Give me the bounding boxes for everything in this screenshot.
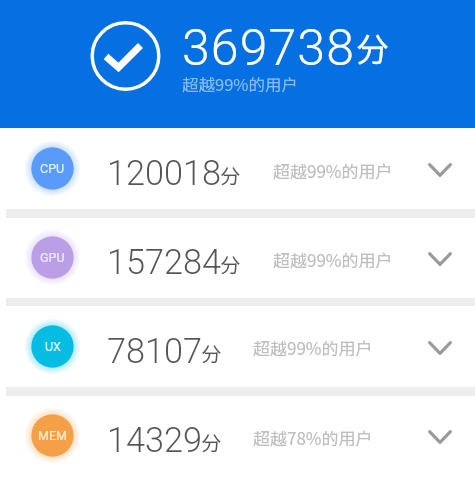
staticText: 分 — [201, 427, 222, 457]
staticText: 369738 — [182, 19, 356, 78]
staticText: 超越78%的用户 — [253, 425, 373, 450]
button[interactable]: CPU — [0, 128, 475, 209]
staticText: 超越99%的用户 — [182, 72, 299, 96]
staticText: CPU — [40, 161, 65, 176]
staticText: 超越99%的用户 — [273, 158, 393, 183]
staticText: 78107 — [107, 331, 203, 371]
staticText: 120018 — [107, 153, 222, 193]
button[interactable]: MEM — [0, 396, 475, 479]
staticText: 分 — [356, 24, 389, 72]
staticText: GPU — [40, 250, 65, 265]
button[interactable]: UX — [0, 306, 475, 387]
staticText: 超越99%的用户 — [273, 247, 393, 272]
other: Benchmark complete — [88, 18, 163, 93]
staticText: 分 — [220, 249, 241, 279]
button[interactable]: Expand MEM details — [416, 413, 464, 461]
button[interactable]: GPU — [0, 218, 475, 298]
staticText: MEM — [38, 428, 67, 443]
staticText: 分 — [220, 160, 241, 190]
button[interactable]: Expand UX details — [416, 324, 464, 372]
staticText: 分 — [201, 338, 222, 368]
staticText: 超越99%的用户 — [253, 335, 373, 360]
staticText: UX — [45, 339, 61, 354]
button[interactable]: Expand GPU details — [416, 235, 464, 283]
button[interactable]: Expand CPU details — [416, 146, 464, 194]
staticText: 157284 — [107, 242, 222, 282]
staticText: 14329 — [107, 420, 203, 460]
